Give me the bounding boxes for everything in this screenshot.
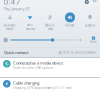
staticText: 0:47 xyxy=(3,0,20,7)
button[interactable]: Location xyxy=(80,11,100,31)
staticText: Airplane xyxy=(4,24,16,27)
button[interactable]: Settings xyxy=(83,0,91,6)
button[interactable]: Collapse panel xyxy=(91,0,98,4)
staticText: Cable charging xyxy=(13,80,39,86)
staticText: Tap here to connect devices xyxy=(58,51,96,54)
button[interactable]: Mobile xyxy=(40,11,60,31)
button[interactable]: Vibrate xyxy=(60,11,80,31)
button[interactable]: Connected as a media device xyxy=(0,57,100,77)
button[interactable]: Cable charging xyxy=(0,77,100,100)
staticText: Wi-Fi xyxy=(27,24,33,27)
staticText: Connected as a media device xyxy=(13,60,63,66)
button[interactable]: Quick connect xyxy=(0,48,100,57)
staticText: Touch for other USB options xyxy=(13,66,53,70)
button[interactable]: Auto brightness xyxy=(89,36,100,43)
staticText: data xyxy=(47,27,52,31)
staticText: TELKOM xyxy=(25,27,34,31)
button[interactable]: Wi-Fi xyxy=(20,11,40,31)
staticText: mode xyxy=(6,27,14,31)
staticText: Vibrate xyxy=(65,24,75,27)
staticText: Quick connect xyxy=(4,50,28,55)
button[interactable]: Airplane xyxy=(0,11,20,31)
staticText: Location xyxy=(84,24,95,27)
staticText: Thu, January 21 xyxy=(3,6,29,11)
staticText: Auto xyxy=(90,40,97,43)
staticText: Charging 47% (Approximately 3 h 11 min) xyxy=(13,86,72,90)
staticText: Mobile xyxy=(45,24,55,27)
